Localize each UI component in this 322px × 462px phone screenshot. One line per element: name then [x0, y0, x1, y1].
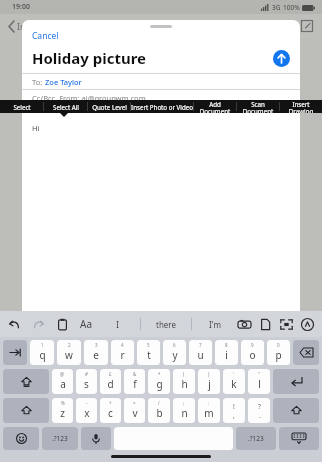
- staticText: Holiday picture: [32, 48, 147, 68]
- staticText: m: [204, 406, 214, 420]
- button[interactable]: !: [223, 398, 245, 423]
- staticText: Scan Document: [237, 100, 279, 113]
- button[interactable]: ?: [248, 398, 270, 423]
- staticText: :: [208, 400, 210, 406]
- button[interactable]: I'm: [192, 311, 238, 337]
- button[interactable]: Scan Document: [237, 100, 279, 113]
- button[interactable]: Shift: [3, 398, 49, 423]
- staticText: g: [156, 377, 163, 391]
- staticText: 19:00: [12, 2, 30, 12]
- button[interactable]: To:: [22, 74, 300, 89]
- staticText: 4: [121, 342, 124, 348]
- button[interactable]: Scan: [280, 318, 293, 331]
- button[interactable]: ): [198, 369, 220, 394]
- button[interactable]: Return: [273, 369, 319, 394]
- staticText: 7: [199, 342, 202, 348]
- staticText: ?: [258, 402, 261, 411]
- button[interactable]: 5: [137, 340, 160, 365]
- button[interactable]: *: [148, 369, 170, 394]
- staticText: t: [147, 348, 151, 362]
- button[interactable]: Filter: [240, 19, 254, 33]
- button[interactable]: £: [100, 369, 121, 394]
- button[interactable]: Select All: [44, 100, 87, 113]
- button[interactable]: 8: [215, 340, 238, 365]
- button[interactable]: Select: [0, 100, 43, 113]
- button[interactable]: ": [248, 369, 270, 394]
- button[interactable]: 0: [267, 340, 290, 365]
- button[interactable]: Backspace: [293, 340, 319, 365]
- button[interactable]: Compose: [300, 19, 314, 33]
- button[interactable]: Dismiss keyboard: [279, 427, 319, 450]
- button[interactable]: Insert Photo or Video: [131, 100, 193, 113]
- staticText: Insert Drawing: [280, 100, 322, 113]
- button[interactable]: Undo: [8, 318, 21, 331]
- staticText: !: [233, 402, 235, 411]
- staticText: I'm: [209, 319, 221, 330]
- staticText: x: [84, 406, 90, 420]
- staticText: k: [231, 377, 237, 391]
- button[interactable]: +: [100, 398, 121, 423]
- staticText: p: [275, 348, 282, 362]
- button[interactable]: @: [52, 369, 73, 394]
- button[interactable]: Paste: [56, 318, 69, 331]
- button[interactable]: =: [124, 398, 145, 423]
- staticText: .?123: [52, 434, 68, 443]
- button[interactable]: :: [198, 398, 220, 423]
- button[interactable]: /: [148, 398, 170, 423]
- staticText: Inbox: [17, 20, 42, 32]
- staticText: a: [60, 377, 66, 391]
- button[interactable]: I: [94, 311, 140, 337]
- button[interactable]: (: [173, 369, 195, 394]
- staticText: ,: [233, 411, 235, 420]
- staticText: 5: [147, 342, 150, 348]
- staticText: #: [85, 371, 88, 377]
- button[interactable]: Tab: [3, 340, 27, 365]
- button[interactable]: 7: [189, 340, 212, 365]
- button[interactable]: 9: [241, 340, 264, 365]
- button[interactable]: #: [76, 369, 97, 394]
- button[interactable]: Emoji: [3, 427, 39, 450]
- button[interactable]: ': [223, 369, 245, 394]
- staticText: b: [156, 406, 163, 420]
- button[interactable]: Inbox: [6, 17, 44, 35]
- button[interactable]: Add Document: [194, 100, 236, 113]
- staticText: £: [109, 371, 112, 377]
- button[interactable]: 1: [30, 340, 54, 365]
- staticText: e: [93, 348, 99, 362]
- staticText: 100%: [283, 3, 300, 12]
- button[interactable]: 4: [111, 340, 134, 365]
- button[interactable]: Quote Level: [88, 100, 130, 113]
- button[interactable]: Insert Drawing: [280, 100, 322, 113]
- staticText: =: [133, 400, 136, 406]
- button[interactable]: 2: [57, 340, 81, 365]
- button[interactable]: Send: [273, 50, 290, 67]
- button[interactable]: Cancel: [22, 29, 63, 43]
- button[interactable]: Shift: [273, 398, 319, 423]
- staticText: h: [181, 377, 188, 391]
- button[interactable]: Markup: [301, 318, 314, 331]
- button[interactable]: -: [76, 398, 97, 423]
- button[interactable]: 3: [84, 340, 108, 365]
- staticText: w: [65, 348, 73, 362]
- button[interactable]: Dictation: [81, 427, 111, 450]
- button[interactable]: Aa: [78, 315, 94, 333]
- staticText: Add Document: [194, 100, 236, 113]
- button[interactable]: Camera: [238, 318, 251, 331]
- button[interactable]: Document: [259, 318, 272, 331]
- button[interactable]: there: [141, 311, 191, 337]
- button[interactable]: Cc/Bcc, From: aj@groupwm.com: [22, 90, 300, 105]
- button[interactable]: .?123: [236, 427, 276, 450]
- button[interactable]: %: [52, 398, 73, 423]
- button[interactable]: ;: [173, 398, 195, 423]
- staticText: j: [208, 377, 211, 391]
- button[interactable]: 6: [163, 340, 186, 365]
- button[interactable]: .?123: [42, 427, 78, 450]
- staticText: f: [133, 377, 137, 391]
- button[interactable]: &: [124, 369, 145, 394]
- staticText: ': [233, 371, 235, 377]
- button[interactable]: Folders: [270, 19, 284, 33]
- button[interactable]: Redo: [32, 318, 45, 331]
- button[interactable]: Caps lock: [3, 369, 49, 394]
- staticText: .?123: [248, 434, 264, 443]
